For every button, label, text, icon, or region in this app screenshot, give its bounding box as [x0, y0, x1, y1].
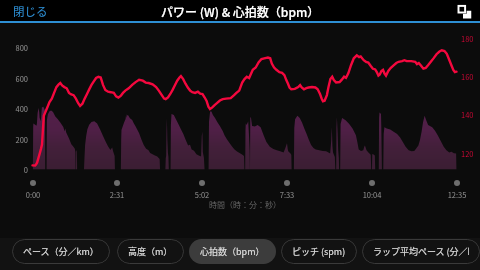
button[interactable]: ピッチ (spm)	[281, 239, 357, 264]
staticText: 600	[12, 73, 28, 84]
staticText: 0	[12, 164, 28, 175]
staticText: 5:02	[182, 189, 222, 200]
staticText: 2:31	[97, 189, 137, 200]
staticText: 120	[461, 148, 474, 159]
button[interactable]: 心拍数（bpm）	[189, 239, 276, 264]
staticText: パワー (W) & 心拍数（bpm）	[161, 3, 320, 20]
staticText: 180	[461, 33, 474, 44]
staticText: 0:00	[13, 189, 53, 200]
staticText: 時間（時：分：秒）	[209, 199, 281, 211]
staticText: 7:33	[267, 189, 307, 200]
button[interactable]: 高度（m）	[117, 239, 184, 264]
staticText: ペース（分／km）	[23, 245, 99, 258]
staticText: 800	[12, 42, 28, 53]
button[interactable]: 閉じる	[8, 0, 53, 23]
button[interactable]: Split screen	[455, 3, 473, 21]
button[interactable]: ラップ平均ペース (分／km）	[362, 239, 480, 264]
staticText: 140	[461, 109, 474, 120]
button[interactable]: ペース（分／km）	[12, 239, 110, 264]
staticText: 心拍数（bpm）	[200, 245, 265, 258]
staticText: 200	[12, 134, 28, 145]
staticText: ラップ平均ペース (分／km）	[373, 245, 469, 258]
staticText: ピッチ (spm)	[292, 245, 346, 258]
staticText: 400	[12, 103, 28, 114]
staticText: 12:35	[437, 189, 477, 200]
staticText: 10:04	[352, 189, 392, 200]
staticText: 160	[461, 71, 474, 82]
staticText: 高度（m）	[128, 245, 173, 258]
staticText: 閉じる	[13, 3, 48, 20]
